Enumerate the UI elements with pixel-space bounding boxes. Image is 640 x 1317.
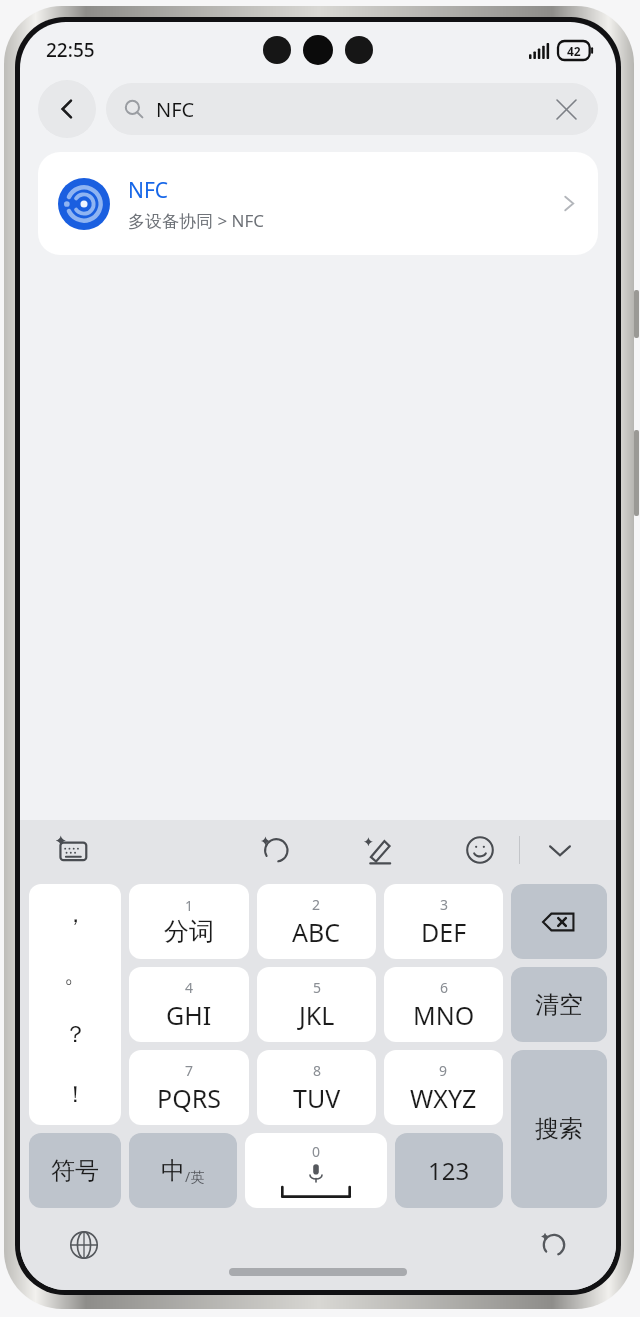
staticText: 6 (440, 978, 449, 997)
button[interactable]: 清空 (511, 967, 607, 1042)
button[interactable]: 搜索 (511, 1050, 607, 1208)
button[interactable]: 5 (257, 967, 376, 1042)
staticText: 22:55 (46, 37, 95, 63)
staticText: 7 (185, 1061, 194, 1080)
staticText: ， (64, 900, 87, 929)
button[interactable]: NFC (38, 152, 598, 255)
staticText: ？ (64, 1020, 87, 1049)
staticText: NFC (128, 176, 169, 205)
staticText: /英 (185, 1167, 205, 1186)
button[interactable]: Handwriting (357, 829, 399, 871)
button[interactable]: 2 (257, 884, 376, 959)
staticText: 2 (312, 895, 321, 914)
staticText: 3 (440, 895, 449, 914)
button[interactable]: 8 (257, 1050, 376, 1125)
staticText: 8 (313, 1061, 322, 1080)
staticText: 1 (185, 896, 194, 915)
staticText: 9 (439, 1061, 448, 1080)
staticText: 5 (313, 978, 322, 997)
staticText: TUV (293, 1081, 341, 1115)
staticText: 搜索 (535, 1114, 583, 1144)
button[interactable]: 7 (129, 1050, 249, 1125)
button[interactable]: Refresh (532, 1223, 576, 1267)
button[interactable]: 6 (384, 967, 503, 1042)
button[interactable]: 9 (384, 1050, 503, 1125)
staticText: PQRS (157, 1081, 221, 1115)
staticText: 符号 (51, 1156, 99, 1186)
staticText: 多设备协同 > NFC (128, 209, 265, 232)
staticText: NFC (156, 96, 195, 123)
staticText: 123 (428, 1154, 470, 1187)
button[interactable]: NFC (106, 83, 598, 135)
button[interactable]: Punctuation (29, 884, 121, 1125)
button[interactable]: 3 (384, 884, 503, 959)
button[interactable]: Hide keyboard (538, 828, 582, 872)
staticText: WXYZ (410, 1081, 477, 1115)
staticText: GHI (166, 998, 212, 1032)
button[interactable]: Backspace (511, 884, 607, 959)
button[interactable]: 123 (395, 1133, 503, 1208)
button[interactable]: 1 (129, 884, 249, 959)
staticText: ！ (64, 1080, 87, 1109)
button[interactable]: Change language (62, 1223, 106, 1267)
staticText: 清空 (535, 990, 583, 1020)
button[interactable]: Space (245, 1133, 387, 1208)
button[interactable]: 中 (129, 1133, 237, 1208)
staticText: ABC (292, 915, 341, 949)
staticText: DEF (421, 915, 467, 949)
staticText: 42 (567, 43, 581, 59)
button[interactable]: Back (38, 80, 96, 138)
staticText: 中 (161, 1156, 185, 1186)
button[interactable]: Keyboard settings (50, 828, 94, 872)
button[interactable]: Clear (552, 95, 580, 123)
button[interactable]: AI assist (255, 829, 297, 871)
button[interactable]: Emoji (459, 829, 501, 871)
button[interactable]: 符号 (29, 1133, 121, 1208)
staticText: 4 (185, 978, 194, 997)
button[interactable]: 4 (129, 967, 249, 1042)
staticText: JKL (299, 998, 335, 1032)
staticText: 0 (312, 1142, 321, 1161)
staticText: 。 (64, 960, 87, 989)
staticText: MNO (413, 998, 475, 1032)
staticText: 分词 (164, 916, 214, 947)
